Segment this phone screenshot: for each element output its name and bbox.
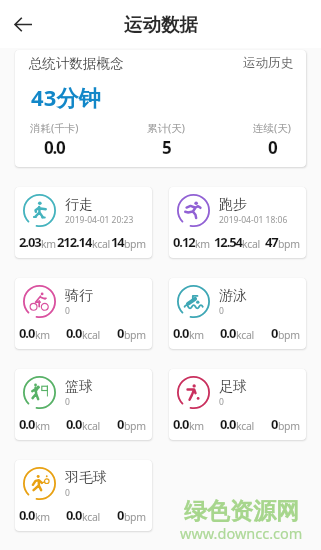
staticText: bpm <box>124 328 146 342</box>
staticText: 跑步 <box>219 196 247 214</box>
staticText: 0.0 <box>19 324 35 342</box>
button[interactable]: 羽毛球 <box>15 460 152 531</box>
staticText: 0 <box>117 324 124 342</box>
staticText: 0 <box>117 506 124 524</box>
staticText: bpm <box>124 510 146 524</box>
staticText: 0 <box>219 396 224 408</box>
staticText: 0.0 <box>173 415 189 433</box>
staticText: km <box>195 237 210 251</box>
staticText: www.downcc.com <box>180 523 303 543</box>
staticText: 0 <box>65 305 70 317</box>
staticText: kcal <box>236 328 254 342</box>
staticText: 0 <box>65 396 70 408</box>
staticText: 0.0 <box>19 415 35 433</box>
staticText: kcal <box>82 510 100 524</box>
staticText: 骑行 <box>65 287 93 305</box>
staticText: 0 <box>271 415 278 433</box>
staticText: bpm <box>278 328 300 342</box>
staticText: 运动数据 <box>124 13 198 36</box>
button[interactable]: 足球 <box>169 369 306 440</box>
staticText: kcal <box>92 237 110 251</box>
staticText: 0.0 <box>66 506 82 524</box>
staticText: 0 <box>268 136 277 159</box>
staticText: km <box>189 328 204 342</box>
staticText: km <box>189 419 204 433</box>
staticText: 47 <box>265 233 278 251</box>
staticText: 篮球 <box>65 378 93 396</box>
button[interactable]: 行走 <box>15 187 152 258</box>
staticText: 0.0 <box>220 415 236 433</box>
staticText: 行走 <box>65 196 93 214</box>
staticText: 0.0 <box>66 324 82 342</box>
staticText: km <box>35 510 50 524</box>
button[interactable]: 跑步 <box>169 187 306 258</box>
staticText: 12.54 <box>214 233 242 251</box>
staticText: kcal <box>242 237 260 251</box>
staticText: km <box>35 328 50 342</box>
staticText: km <box>35 419 50 433</box>
staticText: 2019-04-01 18:06 <box>219 214 288 226</box>
staticText: 绿色资源网 <box>184 497 299 526</box>
staticText: 0.0 <box>19 506 35 524</box>
staticText: 连续(天) <box>253 121 291 135</box>
staticText: km <box>41 237 56 251</box>
staticText: 0.0 <box>220 324 236 342</box>
staticText: bpm <box>124 237 146 251</box>
staticText: bpm <box>278 237 300 251</box>
staticText: 0.0 <box>173 324 189 342</box>
staticText: 2.03 <box>19 233 41 251</box>
button[interactable]: 篮球 <box>15 369 152 440</box>
staticText: 总统计数据概念 <box>29 55 124 72</box>
button[interactable]: 骑行 <box>15 278 152 349</box>
staticText: 14 <box>111 233 124 251</box>
staticText: 0 <box>65 487 70 499</box>
button[interactable]: 游泳 <box>169 278 306 349</box>
staticText: bpm <box>124 419 146 433</box>
staticText: bpm <box>278 419 300 433</box>
staticText: kcal <box>236 419 254 433</box>
staticText: 5 <box>162 136 171 159</box>
staticText: 0.0 <box>66 415 82 433</box>
button[interactable]: 运动历史 <box>243 55 293 71</box>
staticText: 0.0 <box>44 136 65 159</box>
staticText: 足球 <box>219 378 247 396</box>
staticText: 游泳 <box>219 287 247 305</box>
staticText: 43分钟 <box>31 82 101 112</box>
button[interactable]: Back <box>6 7 40 41</box>
staticText: 累计(天) <box>147 121 185 135</box>
staticText: kcal <box>82 419 100 433</box>
staticText: 0.12 <box>173 233 195 251</box>
staticText: 2019-04-01 20:23 <box>65 214 134 226</box>
staticText: 0 <box>271 324 278 342</box>
staticText: kcal <box>82 328 100 342</box>
staticText: 0 <box>219 305 224 317</box>
staticText: 0 <box>117 415 124 433</box>
staticText: 消耗(千卡) <box>30 121 79 135</box>
staticText: 212.14 <box>57 233 92 251</box>
staticText: 羽毛球 <box>65 469 107 487</box>
